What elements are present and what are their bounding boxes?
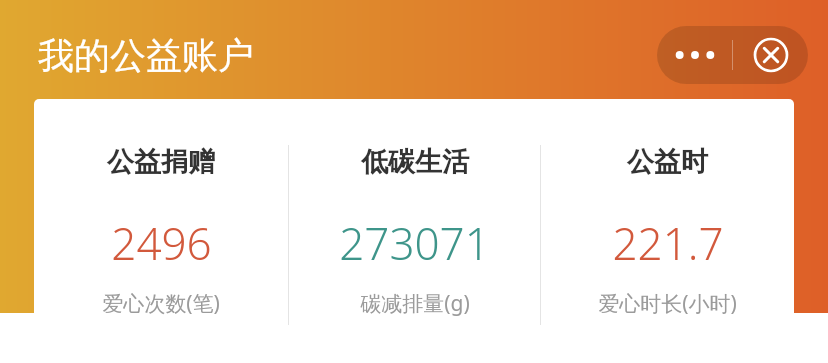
staticText: 碳减排量(g)	[360, 289, 470, 318]
button[interactable]: 公益捐赠	[34, 99, 288, 318]
staticText: 273071	[339, 213, 490, 273]
staticText: 爱心时长(小时)	[598, 289, 737, 318]
staticText: 低碳生活	[361, 145, 469, 179]
button[interactable]: 公益时	[541, 99, 794, 318]
button[interactable]: 低碳生活	[289, 99, 540, 318]
staticText: 公益捐赠	[107, 145, 215, 179]
button[interactable]: Close	[733, 26, 808, 84]
staticText: 爱心次数(笔)	[102, 289, 220, 318]
staticText: 2496	[111, 213, 212, 273]
staticText: 公益时	[627, 145, 708, 179]
button[interactable]: More options	[657, 26, 732, 84]
staticText: 221.7	[612, 213, 724, 273]
staticText: 我的公益账户	[38, 33, 254, 78]
